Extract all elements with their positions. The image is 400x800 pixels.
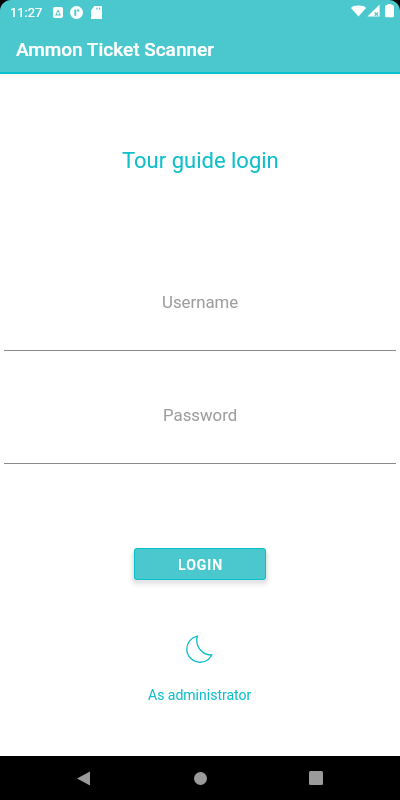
staticText: Tour guide login xyxy=(122,148,279,174)
button[interactable]: Home xyxy=(178,756,223,800)
staticText: Username xyxy=(162,292,239,312)
button[interactable]: Recent apps xyxy=(293,756,338,800)
staticText: Password xyxy=(163,405,238,425)
button[interactable]: Back xyxy=(61,756,106,800)
staticText: 11:27 xyxy=(10,5,43,20)
button[interactable]: As administrator xyxy=(148,633,252,703)
staticText: Ammon Ticket Scanner xyxy=(16,38,214,60)
button[interactable]: Password xyxy=(4,389,396,464)
button[interactable]: Username xyxy=(4,276,396,351)
staticText: LOGIN xyxy=(178,557,224,573)
staticText: As administrator xyxy=(148,687,252,703)
button[interactable]: LOGIN xyxy=(135,549,265,579)
